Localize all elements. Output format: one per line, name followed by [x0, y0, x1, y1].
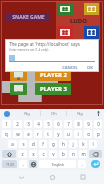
button[interactable]: Voice input	[92, 109, 104, 118]
staticText: ?123	[6, 162, 14, 167]
staticText: 0	[97, 121, 100, 127]
button[interactable]: i	[74, 130, 82, 138]
button[interactable]: 7	[64, 120, 72, 128]
button[interactable]: s	[19, 140, 27, 148]
button[interactable]: o	[84, 130, 92, 138]
button[interactable]: q	[2, 130, 11, 138]
button[interactable]: 9	[84, 120, 92, 128]
staticText: h	[62, 141, 65, 147]
staticText: 2	[16, 121, 19, 127]
staticText: Ng	[77, 111, 83, 116]
button[interactable]: Back	[11, 170, 31, 184]
button[interactable]: Dh	[41, 109, 66, 118]
button[interactable]: a	[8, 140, 17, 148]
button[interactable]: 0	[94, 120, 102, 128]
staticText: b	[62, 151, 65, 157]
staticText: SNAKE GAME	[12, 14, 45, 21]
button[interactable]: l	[89, 140, 97, 148]
button[interactable]: t	[44, 130, 52, 138]
button[interactable]: v	[49, 150, 57, 158]
staticText: u	[67, 131, 70, 137]
button[interactable]: Change language	[29, 160, 37, 168]
button[interactable]: Backspace	[89, 150, 102, 158]
button[interactable]: u	[64, 130, 72, 138]
button[interactable]: 4	[34, 120, 42, 128]
button[interactable]: k	[79, 140, 87, 148]
button[interactable]: e	[24, 130, 32, 138]
button[interactable]: b	[59, 150, 67, 158]
staticText: t	[47, 131, 49, 137]
button[interactable]: CANCEL	[60, 65, 80, 70]
staticText: y	[57, 131, 60, 137]
button[interactable]: Enter	[91, 160, 100, 168]
staticText: 9	[87, 121, 90, 127]
button[interactable]: 5	[44, 120, 52, 128]
button[interactable]: 6	[54, 120, 62, 128]
button[interactable]: c	[39, 150, 47, 158]
staticText: CANCEL	[62, 65, 78, 70]
staticText: Ng	[24, 111, 30, 116]
staticText: s	[22, 141, 25, 147]
button[interactable]: SNAKE GAME	[6, 13, 50, 22]
button[interactable]: 8	[74, 120, 82, 128]
staticText: 7	[67, 121, 70, 127]
staticText: 1	[5, 121, 8, 127]
button[interactable]: 3	[24, 120, 32, 128]
staticText: g	[52, 141, 55, 147]
button[interactable]: ,	[19, 160, 27, 168]
staticText: LUDO	[70, 17, 87, 25]
button[interactable]: 1	[2, 120, 11, 128]
staticText: 6	[57, 121, 60, 127]
staticText: d	[32, 141, 35, 147]
button[interactable]: x	[29, 150, 37, 158]
button[interactable]: Recent apps	[73, 170, 93, 184]
button[interactable]: ?123	[2, 160, 17, 168]
button[interactable]: English	[39, 160, 76, 168]
button[interactable]: d	[29, 140, 37, 148]
staticText: l	[92, 141, 94, 147]
staticText: r	[37, 131, 39, 137]
staticText: w	[16, 131, 20, 137]
staticText: x	[32, 151, 35, 157]
button[interactable]: Home	[42, 170, 62, 184]
button[interactable]: PLAYER 2	[35, 69, 71, 81]
button[interactable]: .	[78, 160, 86, 168]
staticText: PLAYER 2	[40, 71, 67, 79]
button[interactable]: r	[34, 130, 42, 138]
staticText: e	[27, 131, 30, 137]
button[interactable]: f	[39, 140, 47, 148]
button[interactable]: j	[69, 140, 77, 148]
staticText: 4	[37, 121, 40, 127]
staticText: PLAYER 3	[40, 85, 67, 93]
button[interactable]: g	[49, 140, 57, 148]
button[interactable]: z	[18, 150, 27, 158]
button[interactable]: OK	[85, 65, 95, 70]
staticText: v	[52, 151, 55, 157]
button[interactable]: Google Assistant	[0, 109, 14, 118]
button[interactable]: h	[59, 140, 67, 148]
staticText: Dh	[51, 111, 57, 116]
button[interactable]: Shift	[2, 150, 16, 158]
button[interactable]: n	[69, 150, 77, 158]
staticText: n	[72, 151, 75, 157]
staticText: The page at 'http://localhost' says	[9, 41, 80, 47]
button[interactable]: w	[13, 130, 22, 138]
button[interactable]: p	[94, 130, 102, 138]
button[interactable]: 2	[13, 120, 22, 128]
button[interactable]	[10, 69, 27, 81]
button[interactable]: Ng	[14, 109, 40, 118]
staticText: k	[82, 141, 85, 147]
button[interactable]	[10, 83, 27, 95]
staticText: 3	[27, 121, 30, 127]
button[interactable]: m	[79, 150, 87, 158]
staticText: Enter name to set (1-4 only):	[9, 48, 49, 52]
staticText: m	[81, 151, 86, 157]
staticText: z	[21, 151, 24, 157]
button[interactable]: y	[54, 130, 62, 138]
staticText: English	[52, 162, 64, 167]
staticText: ,	[22, 161, 24, 167]
staticText: p	[97, 131, 100, 137]
button[interactable]: PLAYER 3	[35, 83, 71, 95]
staticText: q	[5, 131, 8, 137]
button[interactable]: Ng	[67, 109, 92, 118]
